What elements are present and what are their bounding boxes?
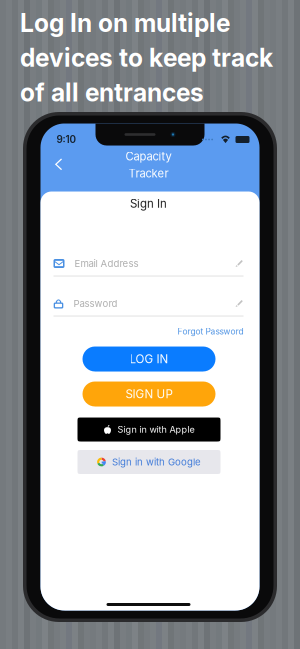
staticText: Password xyxy=(73,298,117,309)
button[interactable]: Forgot Password xyxy=(177,324,243,339)
staticText: of all entrances xyxy=(20,78,204,107)
button[interactable]: SIGN UP xyxy=(82,381,215,406)
button[interactable]: LOG IN xyxy=(82,346,215,371)
staticText: Forgot Password xyxy=(177,326,243,337)
button[interactable]: Sign in with Google xyxy=(77,450,220,474)
staticText: SIGN UP xyxy=(125,387,172,401)
staticText: Tracker xyxy=(128,167,168,180)
staticText: Log In on multiple xyxy=(20,8,230,38)
button[interactable]: Sign in with Apple xyxy=(77,417,220,441)
staticText: devices to keep track xyxy=(20,43,273,73)
staticText: Sign in with Google xyxy=(112,456,201,468)
staticText: Capacity xyxy=(125,150,171,163)
staticText: Email Address xyxy=(74,258,138,269)
staticText: LOG IN xyxy=(129,352,168,366)
button[interactable]: Back xyxy=(47,153,69,175)
staticText: Sign in with Apple xyxy=(117,424,194,435)
staticText: Sign In xyxy=(130,197,167,210)
staticText: 9:10 xyxy=(56,133,76,145)
